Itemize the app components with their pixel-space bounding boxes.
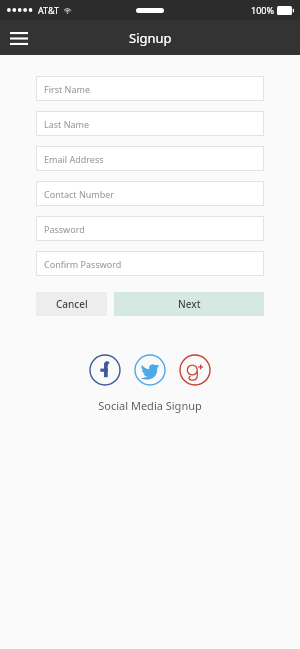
button[interactable]: Email Address (36, 146, 264, 171)
button[interactable]: Last Name (36, 111, 264, 136)
button[interactable]: Contact Number (36, 181, 264, 206)
button[interactable]: Password (36, 216, 264, 241)
button[interactable]: Open navigation menu (4, 23, 34, 53)
staticText: Social Media Signup (0, 398, 300, 413)
button[interactable]: Confirm Password (36, 251, 264, 276)
staticText: AT&T (38, 4, 59, 16)
button[interactable]: First Name (36, 76, 264, 101)
staticText: 100% (251, 4, 274, 16)
button[interactable]: Sign up with Twitter (134, 354, 166, 386)
staticText: First Name (44, 83, 90, 95)
button[interactable]: Sign up with Google Plus (179, 354, 211, 386)
button[interactable]: Next (114, 292, 264, 316)
staticText: Contact Number (44, 188, 115, 200)
staticText: Confirm Password (44, 258, 122, 270)
staticText: Last Name (44, 118, 90, 130)
button[interactable]: Cancel (36, 292, 107, 316)
staticText: Signup (129, 29, 172, 47)
staticText: Email Address (44, 153, 104, 165)
staticText: Next (178, 297, 201, 311)
staticText: Cancel (56, 297, 88, 311)
staticText: Password (44, 223, 85, 235)
button[interactable]: Sign up with Facebook (89, 354, 121, 386)
